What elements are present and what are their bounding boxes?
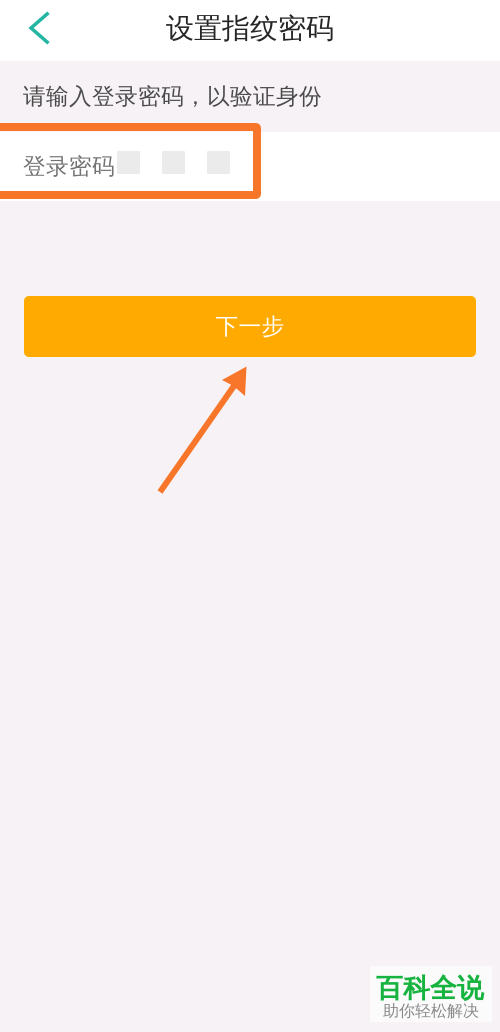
staticText: 助你轻松解决 <box>383 1001 479 1021</box>
button[interactable]: Back <box>0 0 76 61</box>
button[interactable]: 登录密码 <box>0 132 500 201</box>
button[interactable]: 下一步 <box>24 296 476 357</box>
staticText: 百科全说 <box>376 972 484 1005</box>
staticText: 登录密码 <box>23 153 115 180</box>
staticText: 设置指纹密码 <box>166 11 334 46</box>
staticText: 下一步 <box>215 313 284 340</box>
staticText: 请输入登录密码，以验证身份 <box>23 83 322 110</box>
